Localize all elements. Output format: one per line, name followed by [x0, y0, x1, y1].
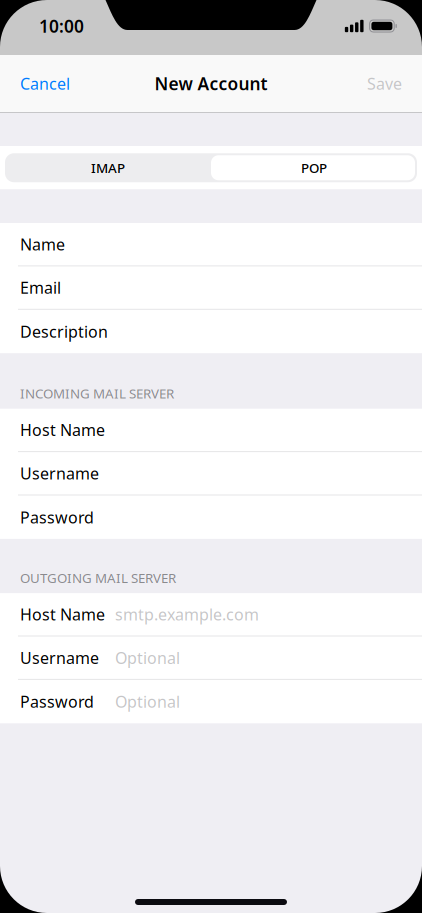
- button[interactable]: Save: [347, 55, 422, 112]
- staticText: Cancel: [20, 73, 70, 94]
- staticText: Name: [20, 234, 65, 255]
- staticText: OUTGOING MAIL SERVER: [20, 569, 176, 587]
- button[interactable]: Cancel: [0, 55, 90, 112]
- staticText: Optional: [115, 647, 180, 668]
- button[interactable]: Email: [0, 266, 422, 310]
- staticText: Optional: [115, 691, 180, 712]
- staticText: Password: [20, 507, 94, 528]
- staticText: 10:00: [39, 14, 84, 37]
- button[interactable]: Username: [0, 452, 422, 495]
- staticText: INCOMING MAIL SERVER: [20, 384, 174, 402]
- button[interactable]: Description: [0, 310, 422, 353]
- staticText: Host Name: [20, 604, 105, 625]
- staticText: Save: [367, 73, 402, 94]
- staticText: IMAP: [91, 159, 125, 177]
- staticText: Host Name: [20, 419, 105, 440]
- staticText: Password: [20, 691, 94, 712]
- button[interactable]: Host Name: [0, 593, 422, 636]
- staticText: Username: [20, 647, 99, 668]
- button[interactable]: IMAP: [5, 153, 211, 182]
- staticText: POP: [301, 159, 327, 177]
- button[interactable]: Password: [0, 495, 422, 539]
- button[interactable]: Username: [0, 636, 422, 680]
- staticText: Description: [20, 321, 108, 342]
- staticText: New Account: [154, 72, 267, 95]
- staticText: Username: [20, 463, 99, 484]
- button[interactable]: Password: [0, 680, 422, 723]
- button[interactable]: Host Name: [0, 409, 422, 452]
- staticText: Email: [20, 277, 61, 298]
- button[interactable]: POP: [211, 153, 417, 182]
- button[interactable]: Name: [0, 223, 422, 266]
- staticText: smtp.example.com: [115, 604, 259, 625]
